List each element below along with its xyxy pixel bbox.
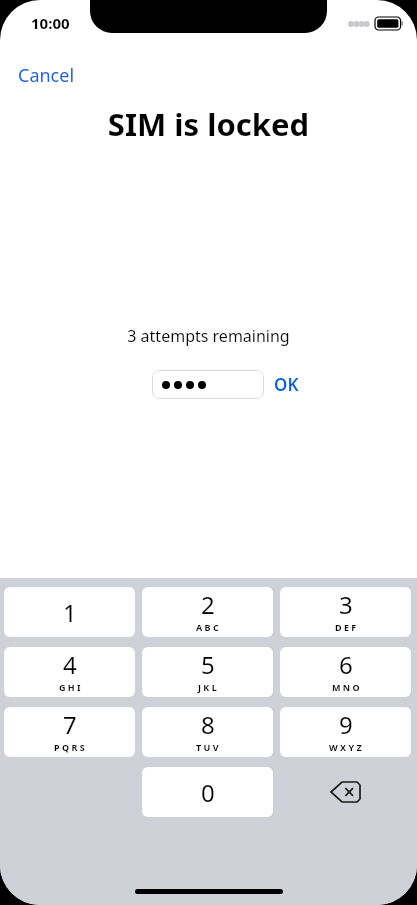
staticText: 10:00	[31, 13, 70, 33]
staticText: T U V	[196, 741, 219, 753]
staticText: 3 attempts remaining	[0, 325, 417, 347]
staticText: G H I	[59, 681, 81, 693]
staticText: 2	[201, 588, 215, 621]
staticText: W X Y Z	[329, 741, 362, 753]
staticText: M N O	[332, 681, 360, 693]
button[interactable]: 7	[4, 707, 135, 757]
staticText: 6	[339, 648, 353, 681]
staticText: OK	[274, 373, 299, 396]
staticText: D E F	[335, 621, 357, 633]
button[interactable]: Cancel	[10, 60, 83, 91]
staticText: A B C	[196, 621, 219, 633]
button[interactable]: 5	[142, 647, 273, 697]
button[interactable]: 2	[142, 587, 273, 637]
staticText: P Q R S	[54, 741, 85, 753]
staticText: SIM is locked	[0, 103, 417, 145]
staticText: 5	[201, 648, 215, 681]
button[interactable]: 1	[4, 587, 135, 637]
button[interactable]: 8	[142, 707, 273, 757]
button[interactable]: OK	[264, 369, 305, 400]
button[interactable]: 0	[142, 767, 273, 817]
button[interactable]: 6	[280, 647, 411, 697]
button[interactable]: 3	[280, 587, 411, 637]
button[interactable]: 4	[4, 647, 135, 697]
staticText: 7	[63, 708, 77, 741]
button[interactable]: 9	[280, 707, 411, 757]
staticText: 3	[339, 588, 353, 621]
staticText: 1	[63, 596, 77, 629]
staticText: J K L	[198, 681, 217, 693]
staticText: 0	[201, 776, 215, 809]
staticText: Cancel	[18, 63, 75, 88]
staticText: 9	[339, 708, 353, 741]
staticText: 8	[201, 708, 215, 741]
button[interactable]: Delete	[280, 767, 411, 817]
button[interactable]: SIM PIN entry	[152, 370, 264, 399]
staticText: 4	[63, 648, 77, 681]
